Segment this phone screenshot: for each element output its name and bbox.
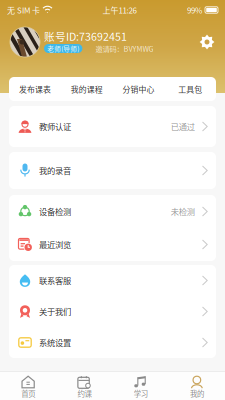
button[interactable]: 最近浏览: [9, 228, 216, 261]
staticText: 关于我们: [39, 305, 71, 317]
staticText: 学习: [134, 388, 148, 399]
staticText: 我的课程: [71, 83, 103, 95]
button[interactable]: 我的录音: [9, 152, 216, 189]
staticText: 老师(导师): [47, 44, 79, 53]
staticText: 约课: [77, 388, 91, 399]
button[interactable]: 教师认证: [9, 106, 216, 147]
button[interactable]: 联系客服: [9, 265, 216, 296]
button[interactable]: 关于我们: [9, 296, 216, 327]
staticText: 未检测: [171, 205, 195, 217]
staticText: 已通过: [171, 120, 195, 132]
button[interactable]: 设置: [199, 34, 215, 50]
staticText: 我的: [190, 388, 204, 399]
staticText: 99%: [187, 4, 202, 16]
button[interactable]: 发布课表: [9, 77, 61, 101]
button[interactable]: 工具包: [164, 77, 216, 101]
button[interactable]: 首页: [0, 371, 56, 400]
staticText: 账号ID:73692451: [44, 28, 127, 44]
staticText: 分销中心: [122, 83, 154, 95]
button[interactable]: 分销中心: [112, 77, 164, 101]
staticText: 教师认证: [39, 120, 71, 132]
staticText: 上午11:26: [102, 4, 136, 16]
button[interactable]: 学习: [112, 371, 169, 400]
staticText: 系统设置: [39, 336, 71, 348]
button[interactable]: 设备检测: [9, 195, 216, 228]
staticText: 无 SIM 卡: [7, 4, 40, 16]
staticText: 我的录音: [39, 164, 71, 176]
staticText: 最近浏览: [39, 238, 71, 250]
button[interactable]: 系统设置: [9, 327, 216, 358]
staticText: 发布课表: [19, 83, 51, 95]
staticText: 首页: [21, 388, 35, 399]
button[interactable]: 我的: [169, 371, 225, 400]
staticText: 设备检测: [39, 205, 71, 217]
button[interactable]: 我的课程: [61, 77, 113, 101]
staticText: 邀请码：BVYMWG: [95, 43, 153, 54]
staticText: 工具包: [178, 83, 202, 95]
staticText: 联系客服: [39, 274, 71, 286]
button[interactable]: 约课: [56, 371, 112, 400]
